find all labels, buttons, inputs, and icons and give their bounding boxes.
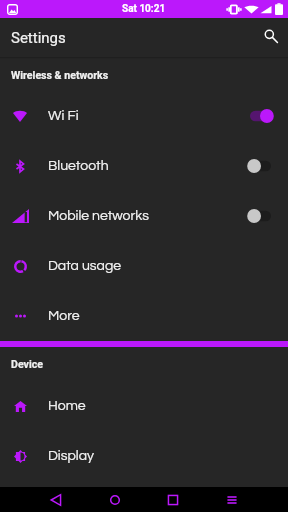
staticText: Home [48, 399, 86, 413]
button[interactable]: Off [247, 206, 274, 226]
staticText: Settings [11, 29, 66, 47]
button[interactable]: Display [0, 431, 288, 481]
button[interactable]: Mobile networks [0, 191, 288, 241]
button[interactable]: Home [103, 487, 127, 512]
staticText: Display [48, 449, 94, 463]
staticText: Mobile networks [48, 209, 149, 223]
button[interactable]: Data usage [0, 241, 288, 291]
button[interactable]: Back [44, 487, 68, 512]
button[interactable]: Bluetooth [0, 141, 288, 191]
staticText: Bluetooth [48, 159, 109, 173]
staticText: More [48, 309, 80, 323]
button[interactable]: Menu [220, 487, 244, 512]
staticText: Data usage [48, 259, 122, 273]
button[interactable]: Off [247, 156, 274, 176]
staticText: Device [11, 358, 43, 370]
button[interactable]: On [247, 106, 274, 126]
button[interactable]: Search [256, 21, 286, 51]
button[interactable]: Home [0, 381, 288, 431]
staticText: Wireless & networks [11, 69, 109, 81]
staticText: Wi Fi [48, 109, 79, 123]
button[interactable]: Wi Fi [0, 91, 288, 141]
staticText: Sat 10:21 [122, 3, 166, 15]
button[interactable]: More [0, 291, 288, 341]
button[interactable]: Recent apps [161, 487, 185, 512]
